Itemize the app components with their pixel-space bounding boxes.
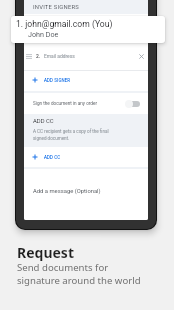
button[interactable]: ADD SIGNER xyxy=(24,72,148,88)
staticText: ADD CC xyxy=(44,155,61,160)
other: Remove signer xyxy=(139,54,144,59)
staticText: Request xyxy=(17,243,74,262)
staticText: A CC recipient gets a copy of the final … xyxy=(33,129,109,141)
staticText: ADD SIGNER xyxy=(44,78,71,83)
button[interactable]: Sign in any order toggle xyxy=(125,99,140,108)
staticText: Send documents for signature around the … xyxy=(17,261,141,287)
button[interactable]: Sign the document in any order xyxy=(24,93,148,114)
button[interactable]: Add a message (Optional) xyxy=(24,169,148,220)
staticText: ADD CC xyxy=(33,118,54,125)
staticText: Email address xyxy=(44,53,75,59)
button[interactable]: 1. john@gmail.com (You) xyxy=(11,16,165,43)
other: Reorder signer xyxy=(26,54,32,59)
staticText: 1. john@gmail.com (You) xyxy=(16,19,113,29)
staticText: Sign the document in any order xyxy=(33,101,98,106)
staticText: 2. xyxy=(36,53,41,59)
button[interactable]: Reorder signer xyxy=(24,46,148,66)
staticText: Add a message (Optional) xyxy=(33,188,101,195)
staticText: John Doe xyxy=(28,30,59,38)
button[interactable]: ADD CC xyxy=(24,149,148,165)
staticText: INVITE SIGNERS xyxy=(33,4,79,11)
